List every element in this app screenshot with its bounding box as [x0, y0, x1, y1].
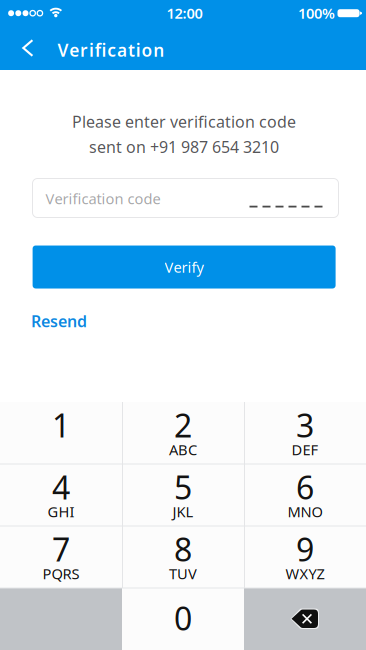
staticText: GHI — [47, 502, 74, 521]
staticText: PQRS — [42, 564, 79, 583]
button[interactable]: Delete — [244, 588, 366, 650]
staticText: 3 — [296, 404, 314, 446]
staticText: MNO — [287, 502, 322, 521]
staticText: 0 — [174, 597, 192, 639]
button[interactable]: Verification code — [32, 178, 338, 217]
staticText: JKL — [172, 502, 193, 521]
staticText: Verification code — [45, 189, 160, 208]
staticText: 4 — [52, 466, 70, 508]
staticText: Verify — [165, 257, 204, 277]
button[interactable]: Verify — [33, 245, 336, 288]
staticText: Resend — [31, 310, 87, 332]
staticText: 100% — [298, 3, 335, 23]
staticText: 1 — [52, 404, 70, 446]
button[interactable]: Back — [7, 26, 49, 70]
staticText: Verification — [57, 38, 164, 61]
staticText: Please enter verification code — [72, 111, 296, 132]
button[interactable]: 7 — [0, 526, 122, 588]
button[interactable]: 9 — [244, 526, 366, 588]
button[interactable]: 6 — [244, 464, 366, 526]
staticText: DEF — [291, 440, 318, 459]
staticText: 12:00 — [166, 3, 202, 23]
button[interactable]: 8 — [122, 526, 244, 588]
staticText: sent on +91 987 654 3210 — [89, 136, 279, 157]
staticText: 6 — [296, 466, 314, 508]
staticText: 2 — [174, 404, 192, 446]
staticText: ABC — [169, 440, 197, 459]
button[interactable]: 0 — [122, 588, 244, 650]
staticText: 8 — [174, 528, 192, 570]
staticText: 7 — [52, 528, 70, 570]
button[interactable]: 4 — [0, 464, 122, 526]
staticText: 9 — [296, 528, 314, 570]
staticText: WXYZ — [285, 564, 324, 583]
button[interactable]: Resend — [31, 313, 87, 329]
button[interactable]: 5 — [122, 464, 244, 526]
button[interactable]: 1 — [0, 402, 122, 464]
button[interactable]: 3 — [244, 402, 366, 464]
button[interactable]: 2 — [122, 402, 244, 464]
staticText: TUV — [169, 564, 197, 583]
staticText: 5 — [174, 466, 192, 508]
